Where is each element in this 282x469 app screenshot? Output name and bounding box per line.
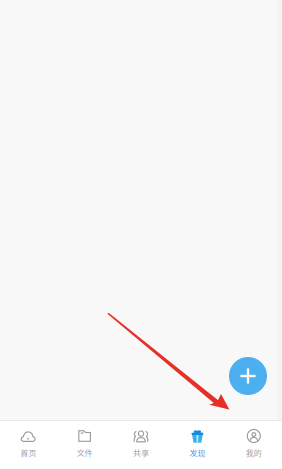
staticText: 我的 xyxy=(246,447,262,459)
button[interactable]: 发现 xyxy=(169,421,226,469)
button[interactable]: 共享 xyxy=(113,421,169,469)
button[interactable]: Create xyxy=(229,357,267,395)
button[interactable]: 我的 xyxy=(226,421,282,469)
staticText: 首页 xyxy=(20,447,36,459)
button[interactable]: 首页 xyxy=(0,421,56,469)
staticText: 文件 xyxy=(77,447,93,459)
staticText: 共享 xyxy=(133,447,149,459)
staticText: 发现 xyxy=(189,447,205,459)
button[interactable]: 文件 xyxy=(56,421,113,469)
